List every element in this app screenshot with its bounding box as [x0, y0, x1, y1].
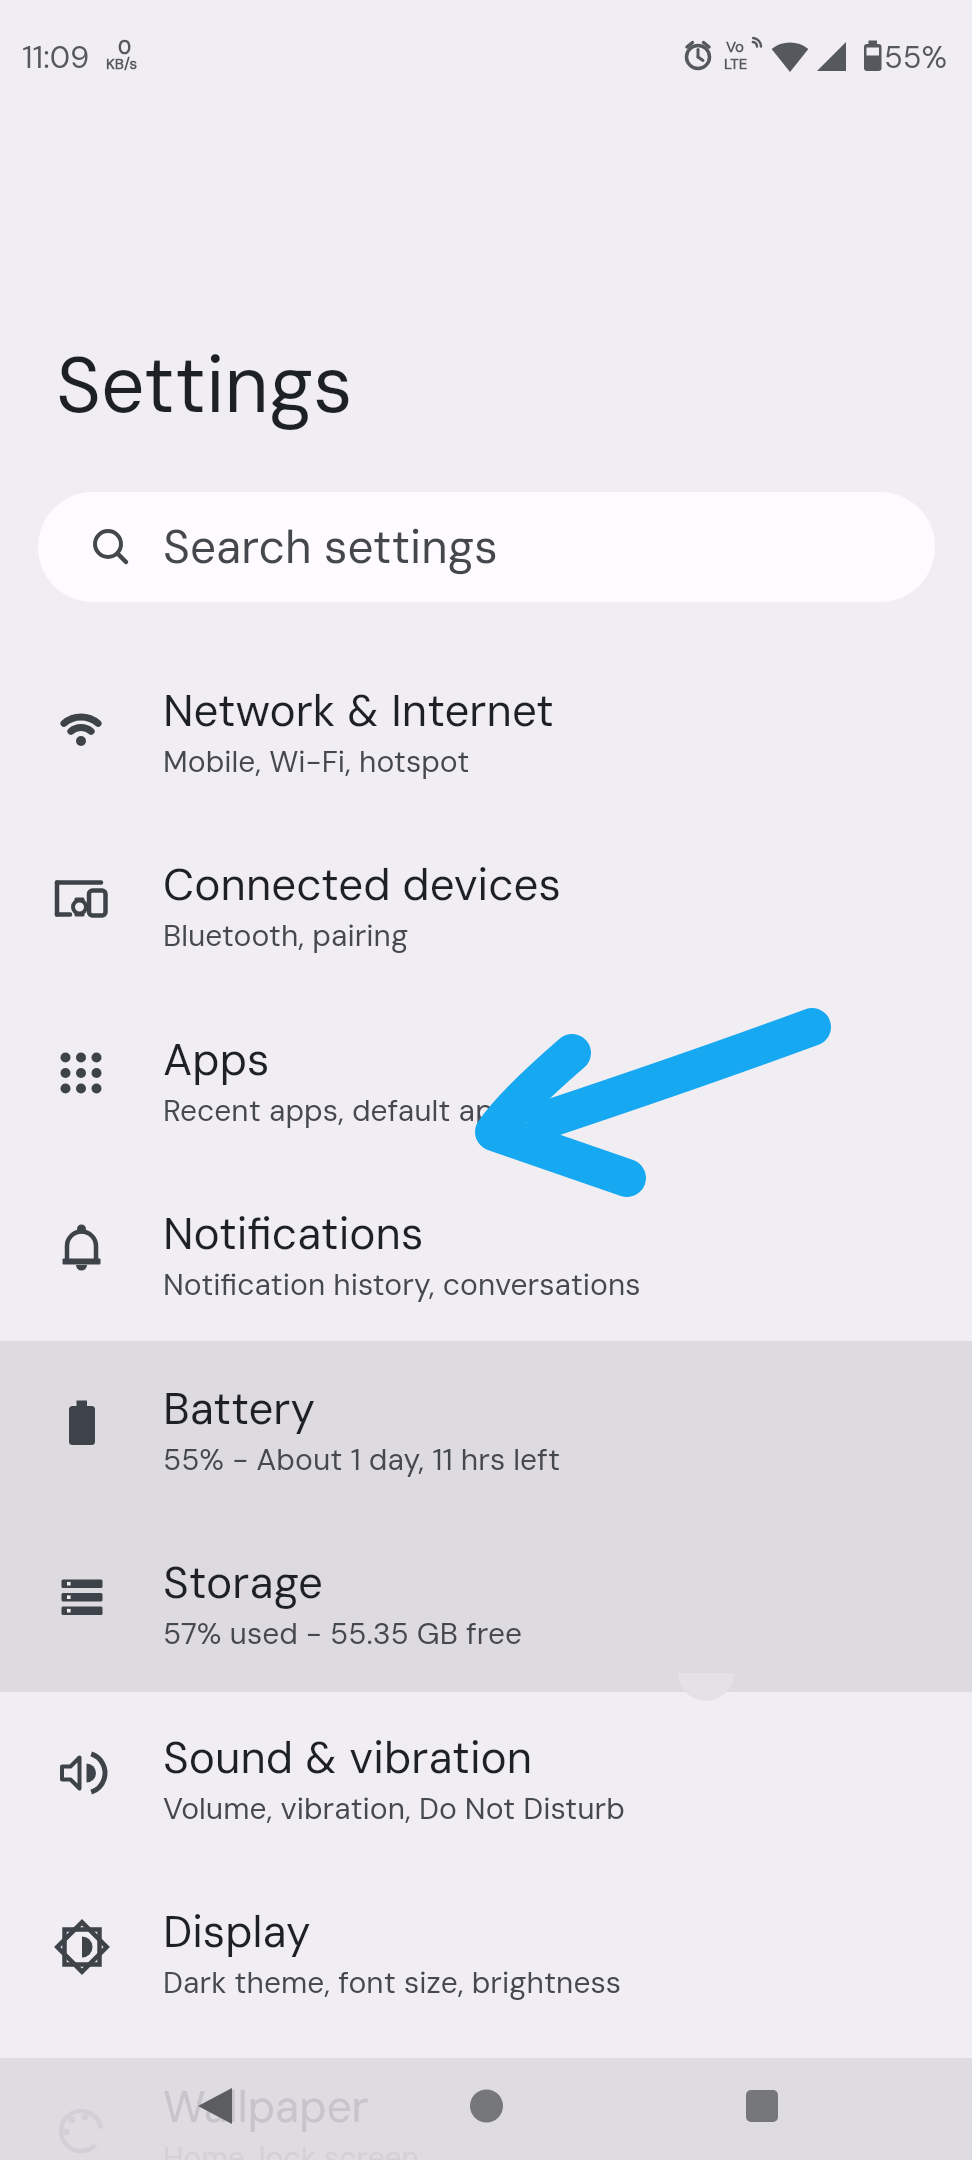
button[interactable] [0, 1171, 972, 1346]
staticText: 0 [118, 34, 132, 60]
staticText: Recent apps, default apps [163, 1091, 528, 1130]
staticText: Home, lock screen [163, 2138, 419, 2160]
button[interactable] [0, 648, 972, 823]
staticText: Bluetooth, pairing [163, 916, 409, 955]
staticText: Mobile, Wi-Fi, hotspot [163, 742, 470, 781]
staticText: LTE [724, 54, 748, 74]
staticText: Network & Internet [163, 682, 554, 739]
button[interactable] [0, 1695, 972, 1870]
staticText: Notification history, conversations [163, 1265, 641, 1304]
staticText: KB/s [106, 54, 138, 74]
staticText: Storage [163, 1554, 324, 1611]
button[interactable] [0, 822, 972, 997]
staticText: 55% - About 1 day, 11 hrs left [163, 1440, 561, 1479]
button[interactable] [0, 1520, 972, 1695]
staticText: Battery [163, 1380, 315, 1437]
button[interactable] [462, 2082, 510, 2130]
staticText: Notifications [163, 1205, 424, 1262]
staticText: Vo [726, 37, 745, 57]
staticText: Settings [56, 336, 353, 436]
button[interactable] [191, 2082, 239, 2130]
staticText: Connected devices [163, 856, 561, 913]
staticText: Apps [163, 1031, 270, 1088]
staticText: Display [163, 1903, 311, 1960]
button[interactable]: Search settings [38, 492, 935, 602]
button[interactable] [738, 2082, 786, 2130]
button[interactable] [0, 1346, 972, 1521]
staticText: Dark theme, font size, brightness [163, 1963, 621, 2002]
staticText: Search settings [163, 517, 498, 577]
staticText: 55% [884, 37, 948, 77]
staticText: Sound & vibration [163, 1729, 533, 1786]
staticText: 11:09 [22, 37, 90, 77]
staticText: Wallpaper [163, 2078, 369, 2135]
staticText: 57% used - 55.35 GB free [163, 1614, 522, 1653]
button[interactable] [0, 997, 972, 1172]
staticText: Volume, vibration, Do Not Disturb [163, 1789, 625, 1828]
button[interactable] [0, 1869, 972, 2044]
